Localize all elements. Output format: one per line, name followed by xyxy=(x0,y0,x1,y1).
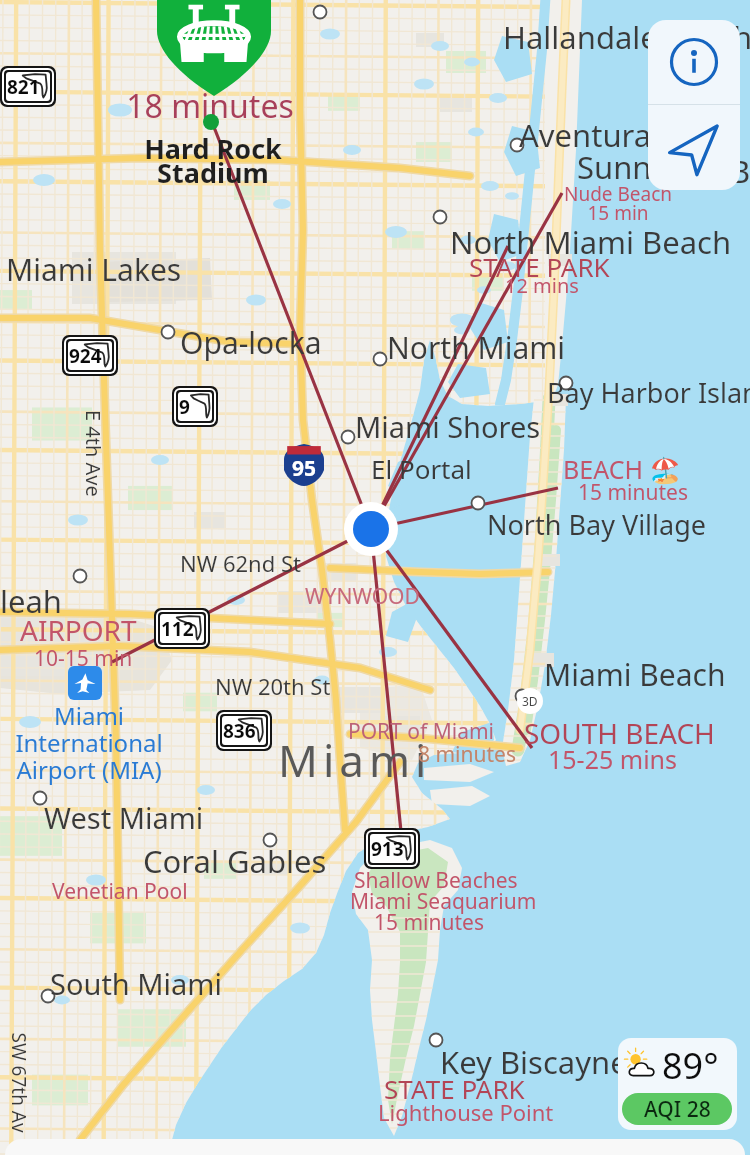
staticText: 18 minutes xyxy=(110,84,310,128)
staticText: 95 xyxy=(292,454,317,483)
button[interactable]: Bottom sheet xyxy=(5,1139,745,1155)
staticText: SW 67th Av xyxy=(5,1032,31,1133)
button[interactable]: Interstate 95 xyxy=(284,444,324,486)
staticText: BEACH 🏖 xyxy=(563,452,750,486)
staticText: Miami Shores xyxy=(355,407,750,446)
button[interactable]: Map information xyxy=(648,20,740,104)
button[interactable]: Route 9 xyxy=(178,392,212,421)
button[interactable]: Miami International Airport xyxy=(68,666,102,700)
staticText: Key Biscayne xyxy=(440,1041,750,1083)
staticText: STATE PARK xyxy=(384,1071,750,1106)
button[interactable]: Route 112 xyxy=(160,614,204,643)
staticText: Shallow Beaches xyxy=(354,866,750,895)
staticText: Stadium xyxy=(143,154,283,191)
button[interactable]: Route 913 xyxy=(370,834,414,863)
staticText: Hallandale xyxy=(503,16,750,58)
staticText: 15-25 mins xyxy=(548,742,750,776)
staticText: 10-15 min xyxy=(34,644,454,673)
staticText: West Miami xyxy=(44,798,464,837)
staticText: leah xyxy=(0,580,420,622)
staticText: h xyxy=(733,16,750,58)
staticText: NW 62nd St xyxy=(180,548,600,578)
staticText: International xyxy=(5,726,173,759)
staticText: South Miami xyxy=(50,964,470,1003)
staticText: Lighthouse Point xyxy=(378,1097,750,1127)
button[interactable]: Hard Rock Stadium xyxy=(157,0,271,96)
staticText: Miami Lakes xyxy=(6,249,426,290)
staticText: 112 xyxy=(161,616,194,642)
staticText: 15 minutes xyxy=(578,478,750,507)
staticText: 89° xyxy=(662,1041,719,1090)
staticText: 924 xyxy=(69,343,102,369)
staticText: North Miami Beach xyxy=(450,221,750,263)
staticText: 821 xyxy=(7,74,40,100)
staticText: Airport (MIA) xyxy=(5,753,173,786)
staticText: SOUTH BEACH xyxy=(524,714,750,752)
staticText: 9 xyxy=(179,394,190,420)
staticText: NW 20th St xyxy=(215,671,635,701)
staticText: Coral Gables xyxy=(143,840,563,882)
staticText: PORT of Miami xyxy=(348,717,750,746)
staticText: 3D xyxy=(522,693,538,709)
staticText: Aventura xyxy=(519,114,750,156)
staticText: Nude Beach xyxy=(558,181,678,207)
staticText: 836 xyxy=(223,718,256,744)
staticText: Hard Rock xyxy=(143,130,283,167)
staticText: B xyxy=(730,150,750,192)
staticText: 15 min xyxy=(578,200,658,226)
button[interactable]: 3D view xyxy=(517,688,543,714)
staticText: North Bay Village xyxy=(487,506,750,543)
staticText: AIRPORT xyxy=(20,611,440,649)
staticText: Bay Harbor Island xyxy=(547,374,750,411)
staticText: Miami xyxy=(278,730,698,790)
staticText: Miami Seaquarium xyxy=(350,887,750,916)
staticText: Miami Beach xyxy=(544,654,750,695)
button[interactable]: Route 924 xyxy=(68,341,112,370)
staticText: El Portal xyxy=(371,451,750,486)
staticText: North Miami xyxy=(387,327,750,368)
staticText: Opa-locka xyxy=(180,322,600,363)
staticText: 15 minutes xyxy=(374,908,750,937)
staticText: 8 minutes xyxy=(418,740,750,769)
button[interactable]: Route 821 xyxy=(6,72,50,101)
button[interactable]: Weather 89 degrees AQI 28 xyxy=(618,1038,737,1130)
button[interactable]: Route 836 xyxy=(222,716,266,745)
staticText: STATE PARK xyxy=(469,249,750,284)
staticText: Venetian Pool xyxy=(52,877,472,906)
staticText: Sunn xyxy=(577,146,750,188)
staticText: Miami xyxy=(5,699,173,732)
staticText: E 4th Ave xyxy=(80,410,107,497)
staticText: AQI 28 xyxy=(644,1095,711,1124)
staticText: WYNWOOD xyxy=(305,582,725,611)
button[interactable]: Current location xyxy=(648,105,740,190)
staticText: 913 xyxy=(371,836,404,862)
staticText: 12 mins xyxy=(505,272,750,299)
